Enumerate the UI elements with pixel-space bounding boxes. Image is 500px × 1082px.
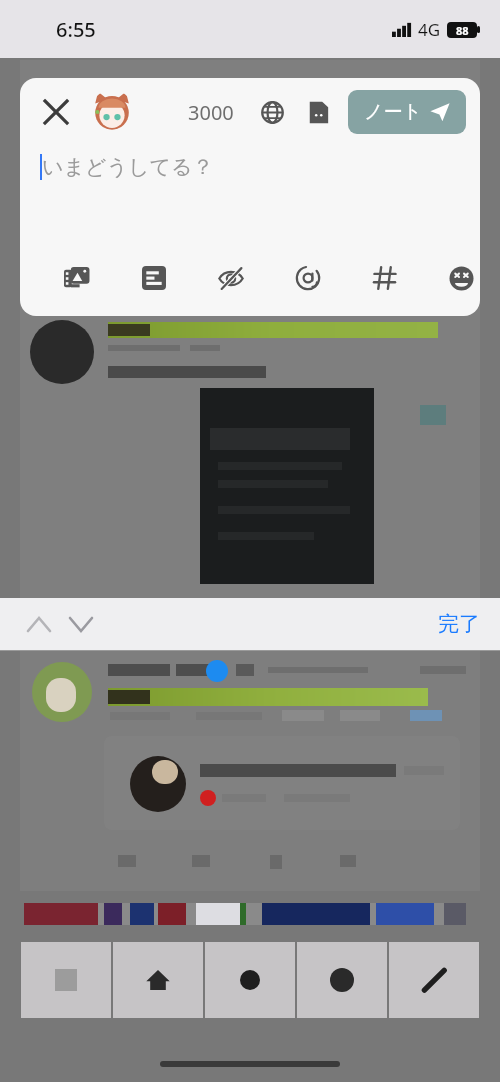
button[interactable]: Content warning bbox=[212, 259, 250, 297]
staticText: いまどうしてる？ bbox=[42, 154, 214, 180]
button[interactable]: Tab bbox=[205, 942, 295, 1018]
button[interactable]: Next field bbox=[60, 603, 102, 645]
button[interactable]: Add hashtag bbox=[366, 259, 404, 297]
button[interactable]: 完了 bbox=[428, 605, 490, 643]
button[interactable]: Mention someone bbox=[289, 259, 327, 297]
staticText: 4G bbox=[418, 18, 441, 41]
button[interactable]: Tab bbox=[113, 942, 203, 1018]
button[interactable]: Close bbox=[34, 90, 78, 134]
button[interactable]: Create poll bbox=[135, 259, 173, 297]
staticText: 88 bbox=[456, 23, 469, 38]
button[interactable]: Account avatar bbox=[90, 90, 134, 134]
button[interactable]: Tab bbox=[21, 942, 111, 1018]
staticText: 3000 bbox=[188, 99, 234, 126]
button[interactable]: Add media bbox=[58, 259, 96, 297]
button[interactable]: Source code note bbox=[298, 92, 338, 132]
button[interactable]: いまどうしてる？ bbox=[40, 154, 480, 248]
staticText: 完了 bbox=[438, 611, 480, 637]
button[interactable]: Visibility: public bbox=[252, 92, 292, 132]
staticText: ノート bbox=[364, 100, 422, 124]
staticText: 6:55 bbox=[56, 16, 96, 43]
button[interactable]: Previous field bbox=[18, 603, 60, 645]
button[interactable]: Insert emoji bbox=[443, 259, 480, 297]
button[interactable]: ノート bbox=[348, 90, 466, 134]
button[interactable]: Tab bbox=[297, 942, 387, 1018]
button[interactable]: Tab bbox=[389, 942, 479, 1018]
